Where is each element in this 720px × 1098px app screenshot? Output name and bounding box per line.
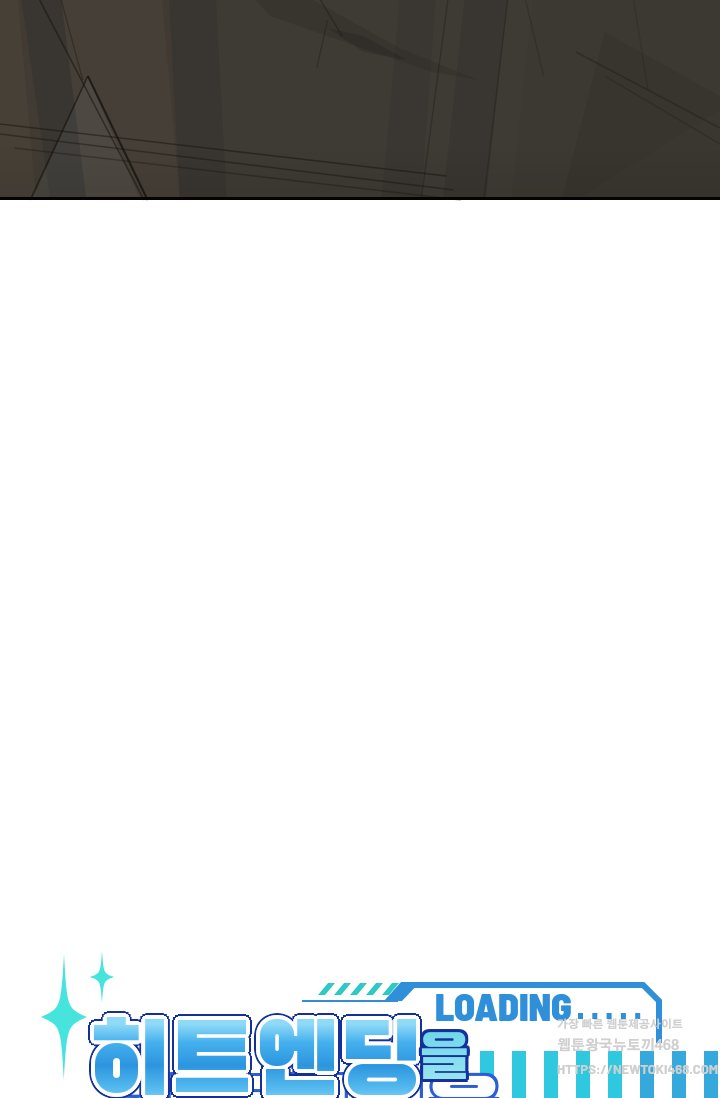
staticText: 히트엔딩을: [115, 1072, 500, 1098]
staticText: 을: [415, 1031, 468, 1093]
staticText: 히트엔딩: [86, 1013, 420, 1098]
staticText: 히트엔딩: [85, 1011, 419, 1098]
staticText: 히트엔딩: [94, 1016, 428, 1098]
staticText: 히트엔딩: [88, 1022, 422, 1098]
staticText: LOADING: [435, 983, 572, 1029]
staticText: 히트엔딩을: [116, 1069, 501, 1098]
staticText: 히트엔딩을: [115, 1073, 500, 1098]
staticText: 히트엔딩을: [121, 1073, 506, 1098]
staticText: 을: [421, 1031, 474, 1093]
staticText: 을: [416, 1027, 469, 1089]
staticText: 히트엔딩: [83, 1019, 417, 1098]
staticText: 히트엔딩을: [118, 1072, 503, 1098]
staticText: 을: [420, 1027, 473, 1089]
staticText: 히트엔딩: [91, 1018, 425, 1098]
staticText: 히트엔딩: [84, 1016, 418, 1098]
staticText: 히트엔딩을: [118, 1069, 503, 1098]
staticText: 히트엔딩: [91, 1014, 425, 1098]
staticText: 히트엔딩을: [118, 1075, 503, 1098]
staticText: 을: [415, 1030, 468, 1092]
staticText: 히트엔딩: [86, 1019, 420, 1098]
staticText: 히트엔딩: [88, 1010, 422, 1098]
staticText: 을: [418, 1030, 471, 1092]
staticText: 히트엔딩: [91, 1021, 425, 1098]
staticText: 히트엔딩: [85, 1014, 419, 1098]
staticText: 웹툰왕국뉴토끼468: [557, 1039, 680, 1053]
staticText: 히트엔딩: [91, 1011, 425, 1098]
button[interactable]: 히트엔딩을: [0, 0, 720, 1098]
staticText: 가장 빠른 웹툰제공사이트: [557, 1019, 683, 1030]
staticText: 히트엔딩: [93, 1019, 427, 1098]
staticText: 히트엔딩을: [115, 1071, 500, 1098]
staticText: 히트엔딩: [90, 1013, 424, 1098]
staticText: 을: [418, 1027, 471, 1089]
staticText: 을: [420, 1033, 473, 1095]
staticText: HTTPS://NEWTOKI468.COM: [557, 1061, 719, 1077]
staticText: 을: [421, 1030, 474, 1092]
staticText: 을: [417, 1033, 470, 1095]
staticText: 히트엔딩: [93, 1013, 427, 1098]
staticText: 히트엔딩을: [120, 1069, 505, 1098]
staticText: 히트엔딩: [85, 1021, 419, 1098]
staticText: 히트엔딩을: [121, 1070, 506, 1098]
staticText: 을: [415, 1029, 468, 1091]
staticText: 히트엔딩: [82, 1016, 416, 1098]
staticText: 히트엔딩을: [120, 1075, 505, 1098]
staticText: 히트엔딩: [92, 1016, 426, 1098]
staticText: 을: [418, 1033, 471, 1095]
staticText: 히트엔딩을: [121, 1072, 506, 1098]
staticText: 을: [421, 1028, 474, 1090]
staticText: 히트엔딩: [85, 1018, 419, 1098]
staticText: 히트엔딩: [83, 1013, 417, 1098]
staticText: 히트엔딩: [88, 1016, 422, 1098]
staticText: 히트엔딩을: [117, 1075, 502, 1098]
staticText: 히트엔딩: [88, 1012, 422, 1098]
staticText: 히트엔딩: [90, 1019, 424, 1098]
staticText: 히트엔딩: [88, 1020, 422, 1098]
